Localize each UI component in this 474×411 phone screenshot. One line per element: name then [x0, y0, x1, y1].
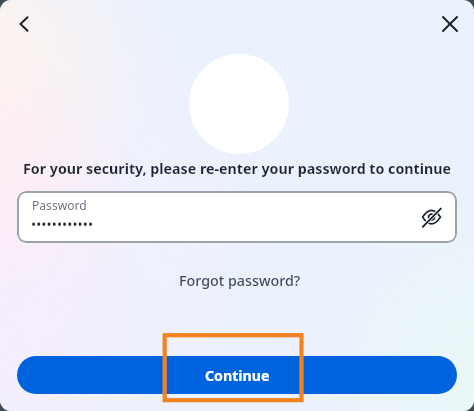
button[interactable]: Password	[17, 191, 457, 243]
staticText: Password	[32, 197, 87, 213]
button[interactable]: Forgot password?	[173, 266, 307, 295]
button[interactable]: Close	[438, 12, 462, 36]
button[interactable]: Continue	[17, 356, 457, 394]
button[interactable]: Show password	[417, 203, 445, 231]
staticText: ••••••••••••	[31, 216, 94, 234]
staticText: Continue	[205, 366, 270, 385]
staticText: For your security, please re-enter your …	[14, 159, 460, 178]
button[interactable]: Back	[12, 12, 36, 36]
